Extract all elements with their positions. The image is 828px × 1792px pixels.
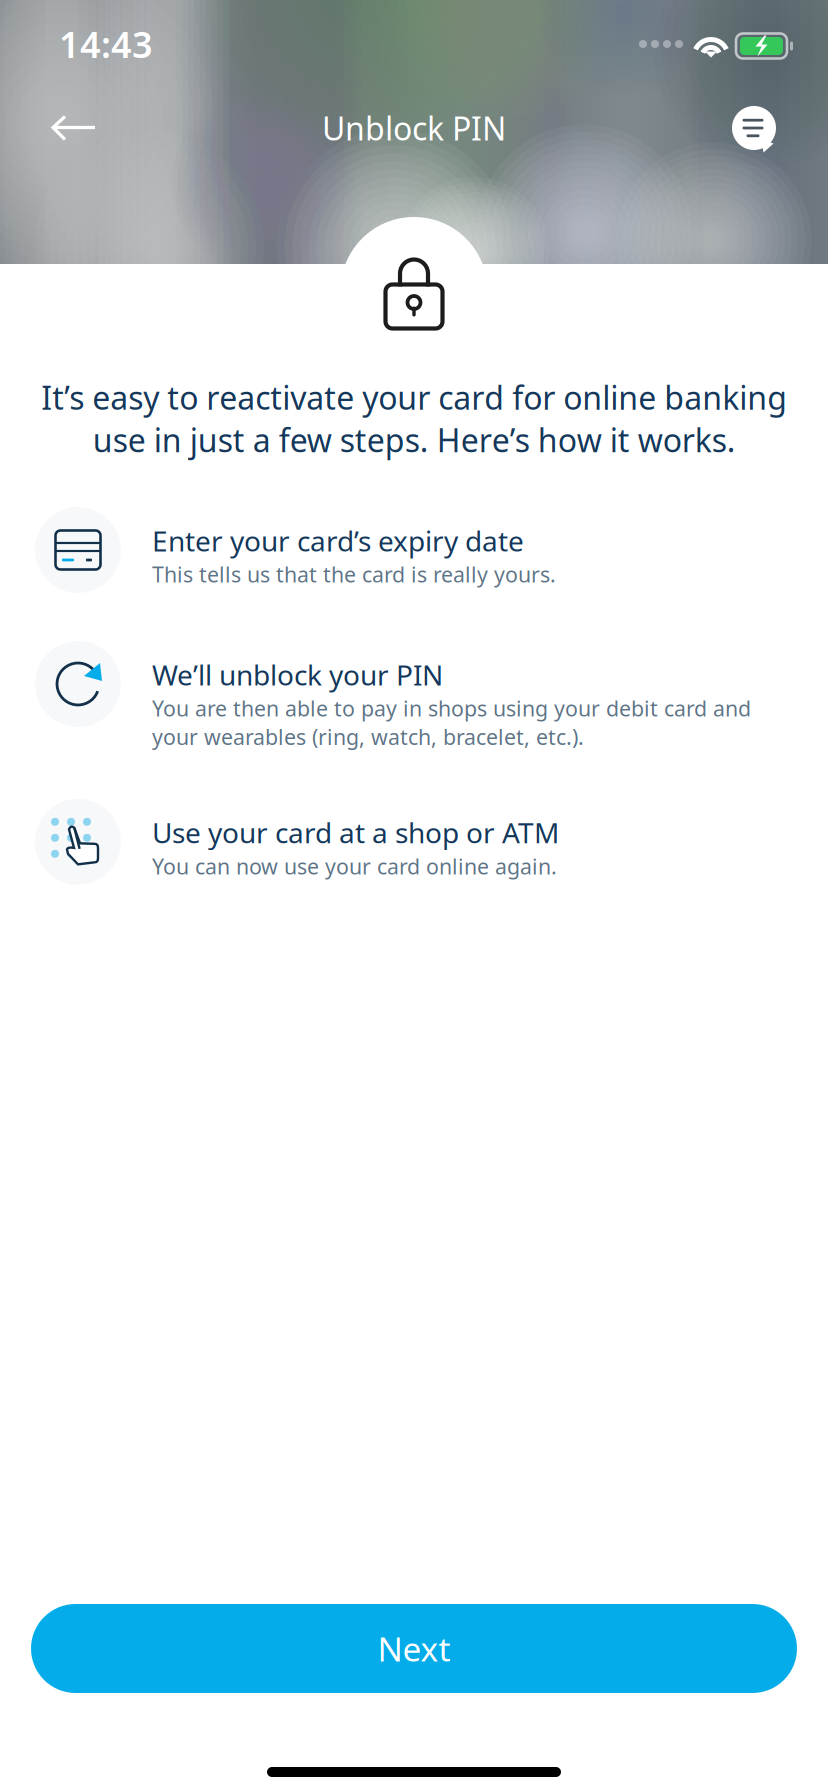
button[interactable]: Back: [38, 92, 110, 164]
staticText: We’ll unblock your PIN: [152, 656, 443, 693]
staticText: Enter your card’s expiry date: [152, 522, 524, 559]
staticText: Unblock PIN: [322, 107, 506, 149]
staticText: It’s easy to reactivate your card for on…: [41, 376, 787, 461]
staticText: 14:43: [59, 20, 153, 68]
staticText: Use your card at a shop or ATM: [152, 814, 559, 851]
staticText: You are then able to pay in shops using …: [152, 694, 751, 751]
staticText: Next: [377, 1626, 450, 1671]
staticText: This tells us that the card is really yo…: [152, 560, 556, 588]
button[interactable]: Chat: [718, 92, 790, 164]
button[interactable]: Next: [31, 1604, 797, 1693]
staticText: You can now use your card online again.: [152, 852, 557, 880]
